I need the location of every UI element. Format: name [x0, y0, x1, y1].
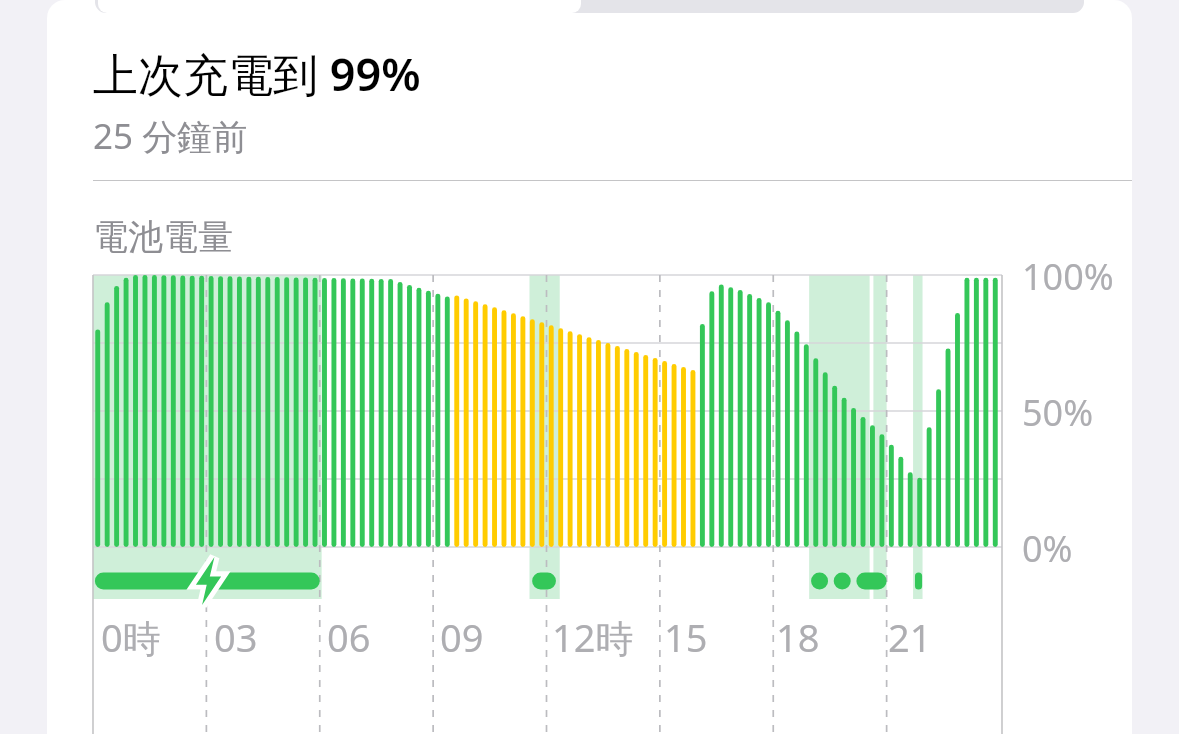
staticText: 06: [327, 611, 371, 663]
staticText: 21: [888, 611, 932, 663]
staticText: 03: [214, 611, 258, 663]
staticText: 15: [664, 611, 708, 663]
staticText: 25 分鐘前: [93, 112, 248, 160]
staticText: 09: [440, 611, 484, 663]
staticText: 0時: [101, 611, 161, 663]
button[interactable]: [95, 0, 1084, 13]
staticText: 0%: [1022, 524, 1073, 573]
staticText: 12時: [552, 611, 634, 663]
staticText: 上次充電到 99%: [93, 43, 421, 104]
staticText: 電池電量: [93, 215, 233, 259]
staticText: 50%: [1022, 388, 1094, 437]
staticText: 100%: [1022, 252, 1114, 301]
staticText: 18: [776, 611, 820, 663]
button[interactable]: 電池電量圖表: [47, 275, 1132, 734]
